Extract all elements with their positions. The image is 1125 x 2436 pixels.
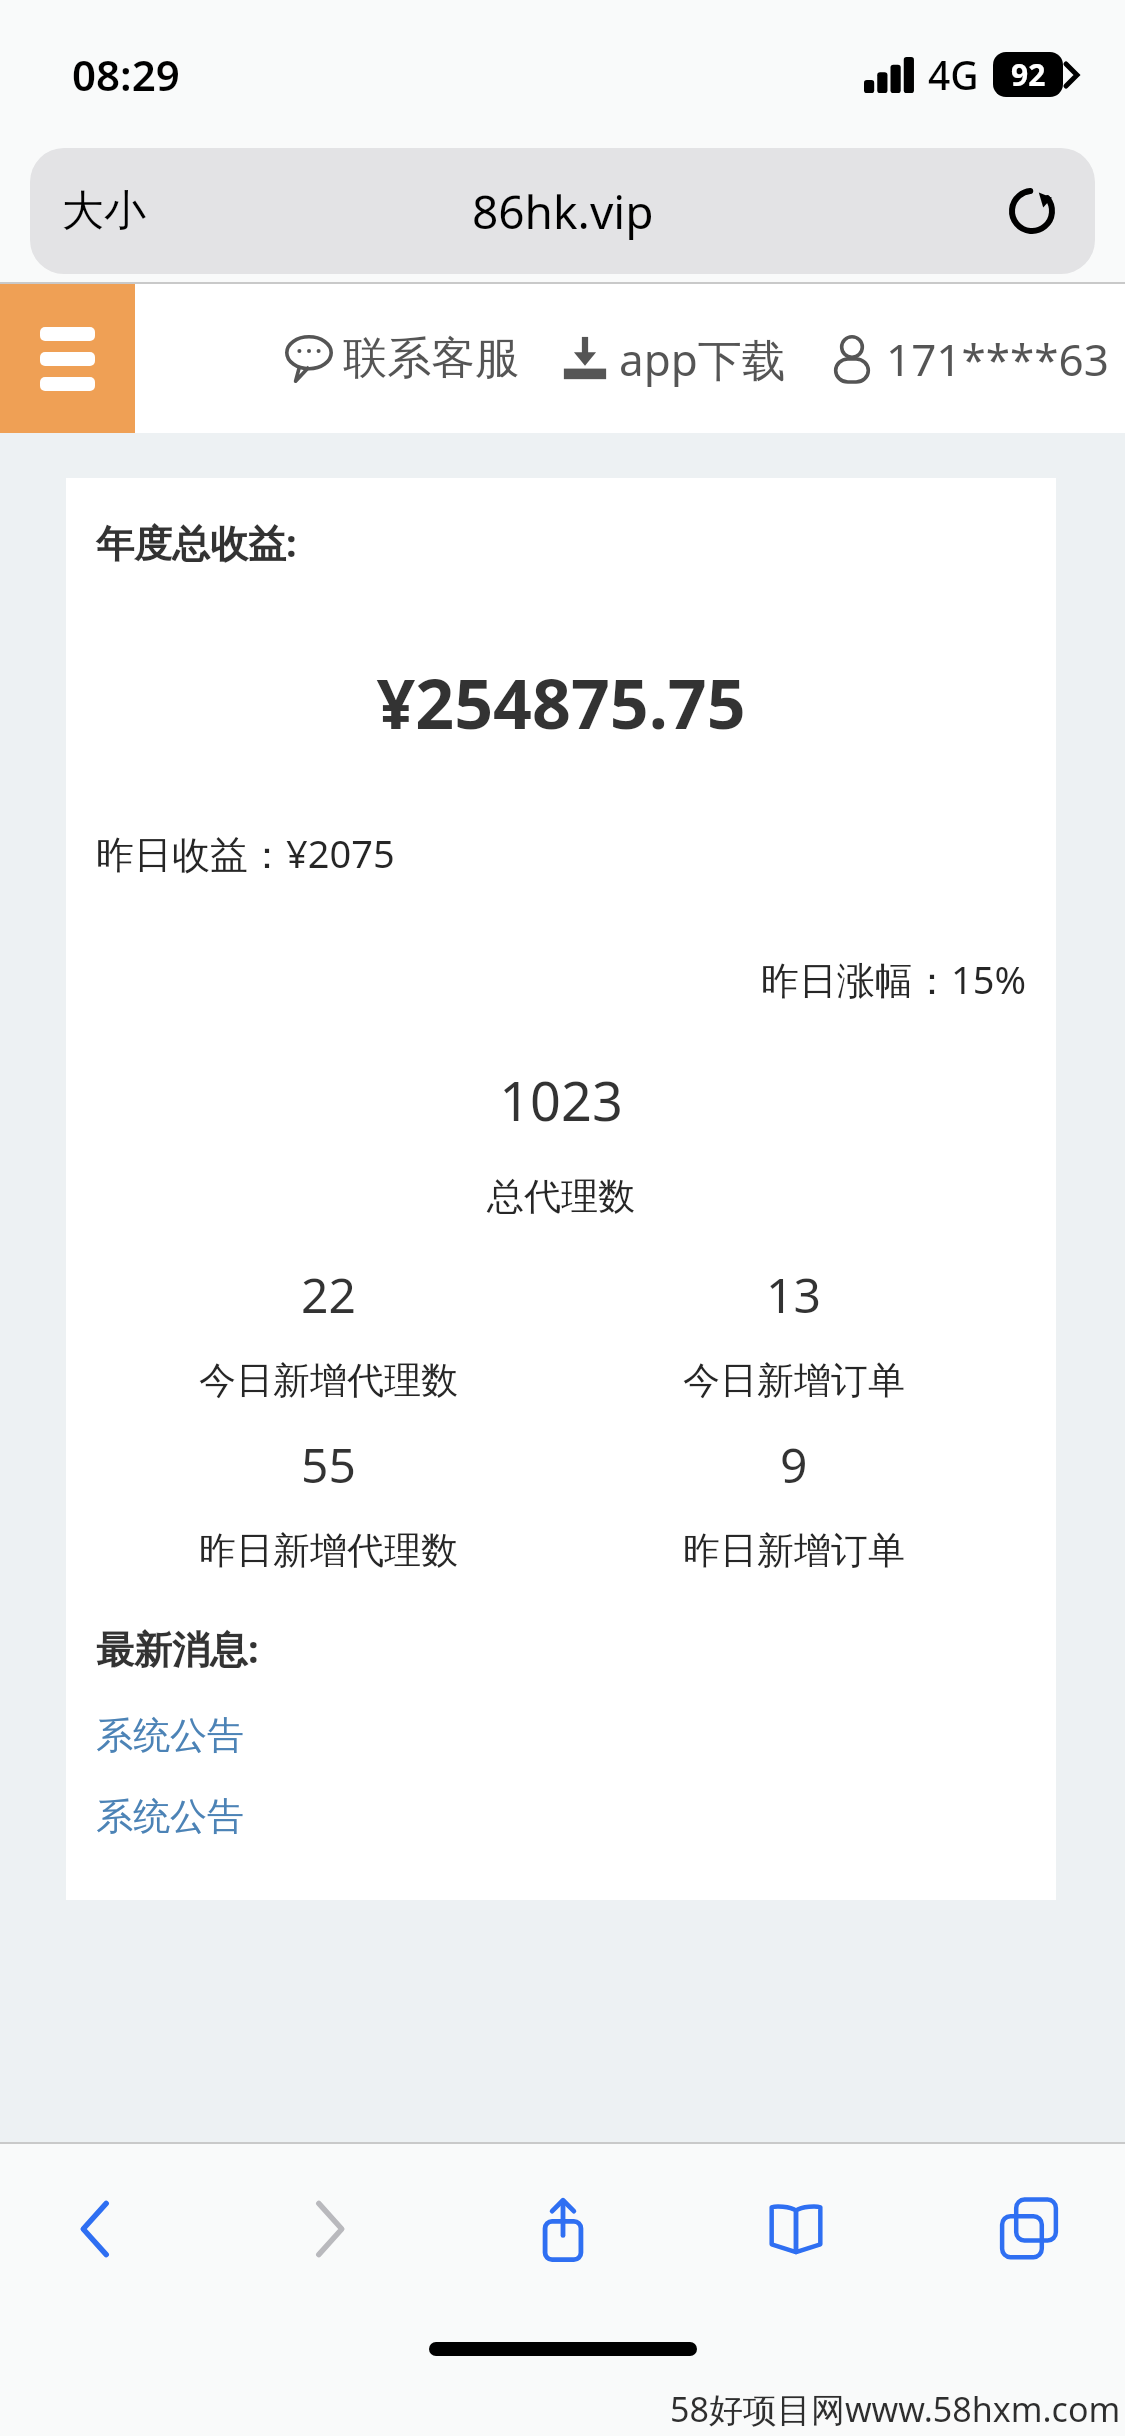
staticText: 昨日收益：¥2075 [96, 827, 395, 879]
staticText: 联系客服 [343, 331, 519, 386]
staticText: 55 [301, 1432, 356, 1497]
button[interactable]: 9 [561, 1432, 1026, 1574]
staticText: ¥254875.75 [96, 656, 1026, 749]
button[interactable]: 大小 [62, 185, 146, 238]
button[interactable]: app下载 [561, 315, 786, 403]
button[interactable]: 22 [96, 1262, 561, 1404]
button[interactable]: Back [36, 2169, 156, 2289]
staticText: 最新消息: [96, 1622, 259, 1674]
button[interactable]: 大小 [30, 148, 1095, 274]
button[interactable]: 联系客服 [285, 317, 519, 400]
staticText: 今日新增订单 [683, 1357, 905, 1404]
staticText: 总代理数 [96, 1173, 1026, 1220]
staticText: 86hk.vip [472, 180, 654, 243]
button[interactable]: Bookmarks [736, 2169, 856, 2289]
staticText: 昨日新增订单 [683, 1527, 905, 1574]
button[interactable]: Forward [269, 2169, 389, 2289]
staticText: 9 [780, 1432, 808, 1497]
staticText: 58好项目网www.58hxm.com [670, 2386, 1121, 2432]
button[interactable]: Menu [0, 284, 135, 433]
button[interactable]: Tabs [969, 2169, 1089, 2289]
staticText: 22 [301, 1262, 356, 1327]
staticText: 昨日新增代理数 [199, 1527, 458, 1574]
staticText: 年度总收益: [96, 516, 297, 568]
button[interactable]: 55 [96, 1432, 561, 1574]
staticText: 92 [1011, 54, 1046, 95]
staticText: app下载 [619, 329, 786, 389]
button[interactable]: 171****63 [828, 315, 1109, 403]
button[interactable]: 系统公告 [96, 1712, 244, 1759]
staticText: 08:29 [72, 46, 180, 103]
button[interactable]: 13 [561, 1262, 1026, 1404]
button[interactable]: Share [503, 2169, 623, 2289]
staticText: 昨日涨幅：15% [96, 953, 1026, 1005]
staticText: 171****63 [886, 329, 1109, 389]
button[interactable]: 系统公告 [96, 1793, 244, 1840]
staticText: 13 [766, 1262, 821, 1327]
button[interactable]: Reload [997, 176, 1067, 246]
staticText: 4G [928, 48, 979, 101]
staticText: 1023 [96, 1063, 1026, 1137]
staticText: 今日新增代理数 [199, 1357, 458, 1404]
